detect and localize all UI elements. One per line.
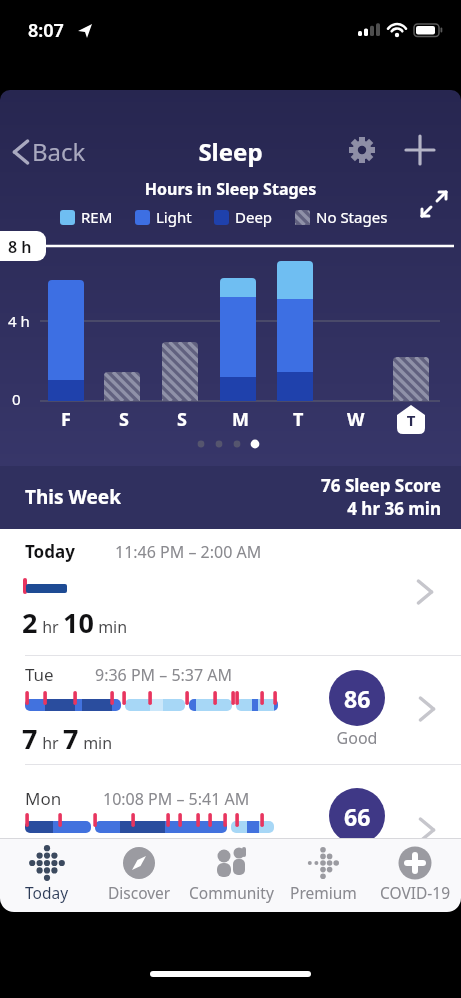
staticText: Premium bbox=[290, 882, 357, 903]
staticText: 10:08 PM – 5:41 AM bbox=[103, 788, 250, 810]
button[interactable]: COVID-19 bbox=[369, 838, 461, 912]
staticText: This Week bbox=[25, 484, 121, 510]
staticText: Mon bbox=[25, 787, 62, 810]
staticText: 2 bbox=[22, 604, 38, 641]
staticText: 9:36 PM – 5:37 AM bbox=[95, 664, 233, 686]
staticText: No Stages bbox=[316, 207, 388, 227]
staticText: 0 bbox=[12, 389, 21, 409]
staticText: min bbox=[94, 616, 128, 638]
staticText: Good bbox=[317, 727, 397, 749]
button[interactable]: Premium bbox=[277, 838, 369, 912]
staticText: 8 h bbox=[8, 236, 32, 258]
staticText: min bbox=[79, 732, 113, 754]
staticText: Sleep bbox=[0, 135, 461, 168]
staticText: M bbox=[232, 407, 249, 432]
staticText: Tue bbox=[25, 663, 54, 686]
staticText: S bbox=[177, 407, 187, 432]
staticText: Today bbox=[25, 882, 69, 903]
staticText: W bbox=[347, 407, 365, 432]
button[interactable]: Today bbox=[0, 529, 461, 656]
staticText: 66 bbox=[344, 801, 371, 832]
staticText: Deep bbox=[235, 207, 273, 227]
button[interactable]: Back bbox=[10, 135, 86, 168]
staticText: S bbox=[119, 407, 129, 432]
staticText: Back bbox=[32, 135, 86, 168]
staticText: Light bbox=[156, 207, 192, 227]
staticText: COVID-19 bbox=[380, 882, 451, 903]
button[interactable] bbox=[420, 190, 448, 218]
button[interactable]: Discover bbox=[93, 838, 185, 912]
button[interactable]: Tue bbox=[0, 656, 461, 764]
staticText: Hours in Sleep Stages bbox=[0, 178, 461, 200]
staticText: 8:07 bbox=[28, 18, 64, 43]
button[interactable] bbox=[405, 135, 435, 165]
button[interactable]: Community bbox=[185, 838, 277, 912]
staticText: T bbox=[293, 407, 304, 432]
button[interactable]: Today bbox=[0, 838, 93, 912]
staticText: 86 bbox=[344, 683, 371, 714]
staticText: 11:46 PM – 2:00 AM bbox=[115, 541, 262, 563]
staticText: T bbox=[404, 410, 418, 430]
staticText: Today bbox=[25, 540, 75, 563]
staticText: Community bbox=[189, 882, 274, 903]
button[interactable] bbox=[345, 133, 379, 167]
staticText: 7 bbox=[22, 720, 38, 757]
staticText: 10 bbox=[63, 604, 94, 641]
button[interactable]: Mon bbox=[0, 765, 461, 838]
staticText: hr bbox=[38, 616, 63, 638]
staticText: T bbox=[408, 407, 419, 432]
staticText: 7 bbox=[63, 720, 79, 757]
staticText: REM bbox=[81, 207, 113, 227]
staticText: Discover bbox=[108, 882, 171, 903]
staticText: hr bbox=[38, 732, 63, 754]
staticText: 76 Sleep Score 4 hr 36 min bbox=[0, 474, 441, 520]
staticText: 4 h bbox=[8, 311, 30, 331]
staticText: F bbox=[61, 407, 71, 432]
